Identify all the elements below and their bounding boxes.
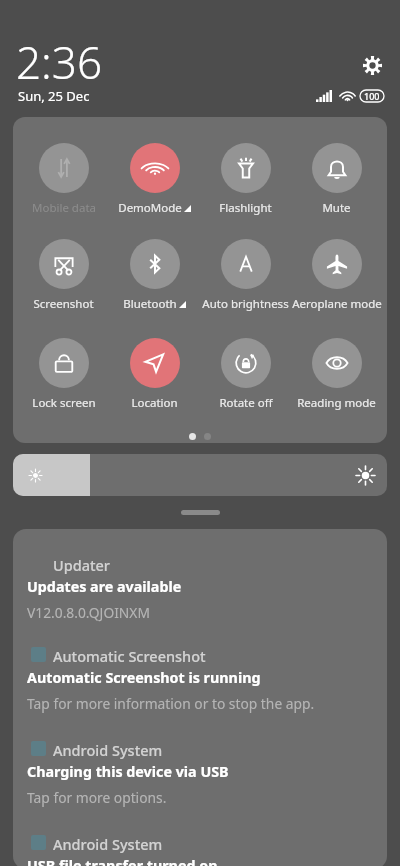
- staticText: Location: [131, 395, 178, 410]
- staticText: Rotate off: [219, 395, 273, 410]
- button[interactable]: Reading mode: [291, 313, 382, 410]
- button[interactable]: Flashlight: [200, 117, 291, 216]
- staticText: Automatic Screenshot: [53, 646, 206, 666]
- staticText: 2:36: [16, 32, 103, 92]
- staticText: USB file transfer turned on: [27, 856, 218, 866]
- staticText: V12.0.8.0.QJOINXM: [27, 603, 150, 622]
- button[interactable]: Brightness: [13, 454, 387, 496]
- button[interactable]: Mobile data: [18, 117, 109, 216]
- staticText: DemoMode: [118, 200, 182, 216]
- staticText: Screenshot: [33, 296, 94, 312]
- button[interactable]: Automatic Screenshot: [13, 627, 387, 718]
- button[interactable]: Location: [109, 313, 200, 410]
- staticText: Tap for more options.: [27, 788, 167, 807]
- staticText: Android System: [53, 834, 163, 854]
- staticText: Automatic Screenshot is running: [27, 668, 261, 687]
- staticText: Reading mode: [297, 395, 376, 410]
- button[interactable]: Aeroplane mode: [291, 216, 382, 312]
- staticText: Lock screen: [32, 395, 96, 410]
- staticText: Flashlight: [219, 200, 272, 216]
- staticText: Aeroplane mode: [292, 296, 382, 312]
- button[interactable]: Screenshot: [18, 216, 109, 312]
- button[interactable]: Lock screen: [18, 313, 109, 410]
- button[interactable]: Settings: [362, 55, 383, 76]
- button[interactable]: DemoMode: [109, 117, 200, 216]
- staticText: Bluetooth: [123, 296, 177, 312]
- button[interactable]: Android System: [13, 721, 387, 812]
- staticText: Mute: [322, 200, 351, 216]
- button[interactable]: Rotate off: [200, 313, 291, 410]
- staticText: Mobile data: [32, 200, 96, 216]
- staticText: Updater: [53, 555, 110, 575]
- staticText: Charging this device via USB: [27, 762, 229, 781]
- button[interactable]: Bluetooth: [109, 216, 200, 312]
- button[interactable]: Updater: [13, 536, 387, 627]
- staticText: Auto brightness: [202, 296, 289, 312]
- staticText: Sun, 25 Dec: [18, 87, 90, 105]
- button[interactable]: Auto brightness: [200, 216, 291, 312]
- staticText: 100: [364, 90, 380, 102]
- staticText: Android System: [53, 740, 163, 760]
- button[interactable]: Android System: [13, 815, 387, 866]
- staticText: Updates are available: [27, 577, 182, 596]
- staticText: Tap for more information or to stop the …: [27, 694, 315, 713]
- button[interactable]: Mute: [291, 117, 382, 216]
